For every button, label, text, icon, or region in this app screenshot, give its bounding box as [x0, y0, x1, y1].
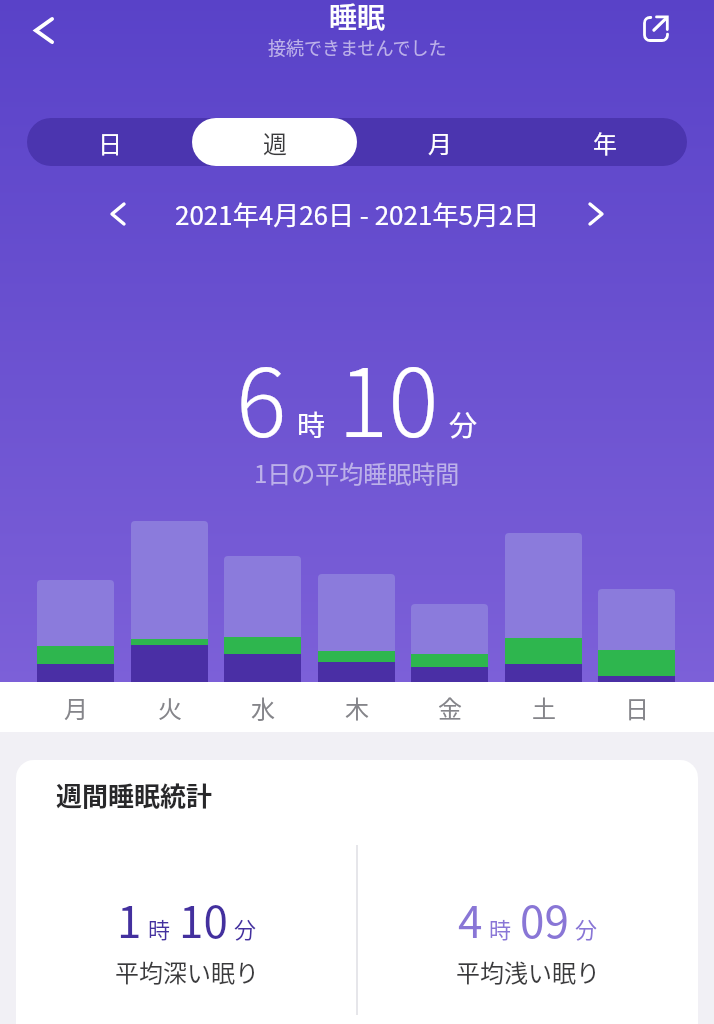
- button[interactable]: [632, 5, 680, 53]
- button[interactable]: [18, 4, 70, 56]
- staticText: 分: [449, 404, 478, 445]
- staticText: 分: [234, 912, 257, 944]
- staticText: 土: [532, 690, 556, 725]
- staticText: 金: [438, 690, 462, 725]
- button[interactable]: [98, 194, 138, 234]
- staticText: 1: [117, 887, 142, 951]
- staticText: 接続できませんでした: [268, 34, 447, 60]
- staticText: 火: [158, 690, 182, 725]
- staticText: 週: [263, 125, 287, 160]
- staticText: 10: [338, 328, 439, 464]
- staticText: 日: [625, 690, 649, 725]
- staticText: 2021年4月26日 - 2021年5月2日: [175, 195, 540, 233]
- staticText: 月: [64, 690, 88, 725]
- button[interactable]: 年: [522, 118, 687, 166]
- staticText: 睡眠: [329, 0, 386, 37]
- staticText: 時: [489, 912, 512, 944]
- staticText: 分: [575, 912, 598, 944]
- staticText: 木: [345, 690, 369, 725]
- staticText: 平均浅い眠り: [456, 954, 600, 989]
- button[interactable]: 日: [27, 118, 192, 166]
- button[interactable]: [576, 194, 616, 234]
- staticText: 09: [520, 887, 569, 951]
- staticText: 6: [236, 328, 287, 464]
- button[interactable]: 月: [357, 118, 522, 166]
- staticText: 日: [98, 125, 122, 160]
- staticText: 平均深い眠り: [115, 954, 259, 989]
- staticText: 時: [297, 404, 326, 445]
- staticText: 4: [458, 887, 483, 951]
- staticText: 月: [428, 125, 452, 160]
- staticText: 10: [179, 887, 228, 951]
- staticText: 週間睡眠統計: [56, 776, 213, 814]
- staticText: 時: [148, 912, 171, 944]
- staticText: 年: [593, 125, 617, 160]
- staticText: 水: [251, 690, 275, 725]
- staticText: 1日の平均睡眠時間: [254, 455, 460, 490]
- button[interactable]: 週: [192, 118, 357, 166]
